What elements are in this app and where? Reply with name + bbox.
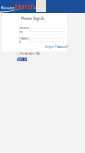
staticText: Password [19,37,30,44]
button[interactable]: Remember Me [17,52,40,55]
button[interactable]: Sign In [17,58,27,61]
staticText: Forgot Password? [45,45,68,49]
button[interactable]: Forgot Password? [45,45,68,49]
staticText: Match [14,2,34,11]
staticText: Username [19,26,29,33]
staticText: Please Sign In [21,16,44,21]
staticText: Remember Me [20,52,40,55]
staticText: .us [34,6,38,10]
staticText: Route [1,5,14,10]
staticText: Sign In [17,57,27,61]
